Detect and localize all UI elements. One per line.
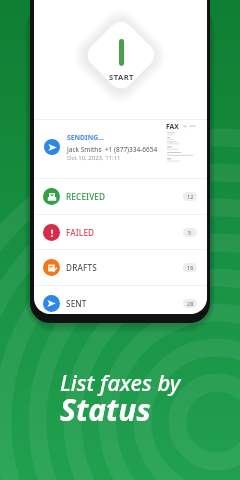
staticText: FAX [166,122,179,131]
staticText: RECEIVED [66,191,106,202]
staticText: Oct 10, 2023, 11:11 [67,154,121,162]
button[interactable]: Start fax [83,17,159,93]
button[interactable]: SENDING... [34,119,207,174]
button[interactable]: RECEIVED [34,178,207,214]
button[interactable]: SENT [34,285,207,314]
staticText: SENT [66,298,87,309]
staticText: Status [60,389,151,430]
staticText: List faxes by [60,367,181,397]
button[interactable]: FAILED [34,214,207,250]
staticText: START [109,72,134,82]
staticText: 16 [187,264,194,271]
staticText: 5 [188,229,192,236]
staticText: FAILED [66,227,95,238]
staticText: 28 [187,300,194,307]
staticText: DRAFTS [66,262,97,273]
staticText: Jack Smiths +1 (877)334-6654 [67,145,158,154]
staticText: 12 [187,193,194,200]
staticText: SENDING... [67,133,104,142]
button[interactable]: DRAFTS [34,249,207,285]
